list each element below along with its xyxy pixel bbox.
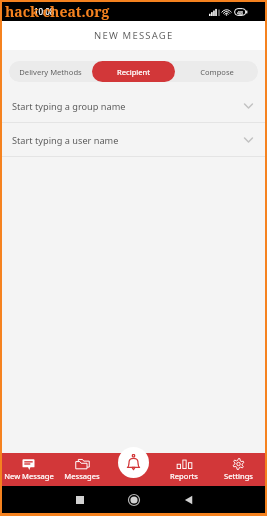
staticText: hack cheat.org (5, 2, 110, 21)
button[interactable]: Recipient (92, 61, 175, 82)
button[interactable]: Delivery Methods (9, 61, 92, 82)
staticText: 48 (237, 9, 243, 16)
staticText: Delivery Methods (19, 67, 82, 77)
staticText: Recipient (117, 67, 150, 77)
button[interactable]: Compose (175, 61, 258, 82)
button[interactable]: Back (179, 491, 197, 509)
button[interactable]: Start typing a user name (2, 123, 265, 157)
staticText: Reports (170, 471, 198, 481)
staticText: Compose (200, 67, 234, 77)
button[interactable]: Messages (55, 453, 109, 486)
staticText: Start typing a group name (12, 100, 126, 113)
staticText: Messages (64, 471, 100, 481)
staticText: 10:08 (34, 6, 55, 17)
staticText: NEW MESSAGE (94, 29, 174, 42)
button[interactable]: Notifications (118, 447, 149, 478)
staticText: Start typing a user name (12, 134, 119, 147)
button[interactable]: Reports (157, 453, 211, 486)
staticText: Settings (224, 471, 253, 481)
button[interactable]: New Message (2, 453, 55, 486)
staticText: New Message (4, 471, 54, 481)
button[interactable]: Start typing a group name (2, 89, 265, 123)
button[interactable]: Home (125, 491, 143, 509)
button[interactable]: Recents (71, 491, 89, 509)
button[interactable]: Settings (211, 453, 265, 486)
